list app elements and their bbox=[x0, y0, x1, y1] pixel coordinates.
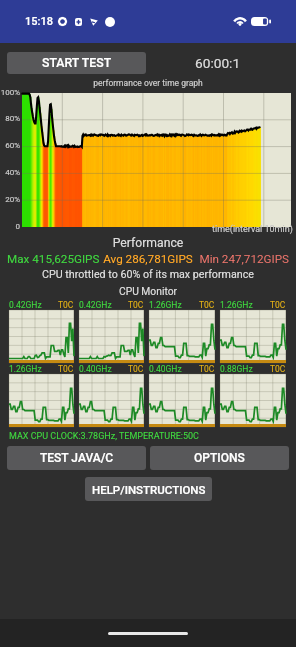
staticText: 0.42GHz bbox=[79, 300, 112, 310]
button[interactable]: START TEST bbox=[7, 52, 146, 74]
staticText: 20% bbox=[0, 195, 20, 204]
staticText: performance over time graph bbox=[0, 78, 296, 88]
staticText: 15:18 bbox=[25, 15, 53, 28]
staticText: T0C bbox=[128, 300, 144, 310]
staticText: T0C bbox=[199, 300, 215, 310]
staticText: Performance bbox=[0, 236, 296, 250]
button[interactable]: OPTIONS bbox=[150, 446, 289, 470]
staticText: TEST JAVA/C bbox=[40, 451, 114, 465]
staticText: T0C bbox=[199, 364, 215, 374]
button[interactable]: HELP/INSTRUCTIONS bbox=[85, 477, 212, 501]
staticText: T0C bbox=[270, 300, 286, 310]
staticText: HELP/INSTRUCTIONS bbox=[92, 483, 206, 496]
staticText: time(interval 10min) bbox=[212, 224, 293, 235]
staticText: MAX CPU CLOCK:3.78GHz, TEMPERATURE:50C bbox=[9, 431, 296, 442]
staticText: 100% bbox=[0, 88, 20, 97]
staticText: Avg 286,781GIPS bbox=[101, 252, 195, 266]
staticText: 1.26GHz bbox=[220, 300, 253, 310]
staticText: Min 247,712GIPS bbox=[195, 252, 289, 266]
staticText: T0C bbox=[270, 364, 286, 374]
staticText: T0C bbox=[58, 364, 74, 374]
staticText: 60% bbox=[0, 141, 20, 150]
staticText: 40% bbox=[0, 168, 20, 177]
staticText: 0 bbox=[0, 222, 20, 231]
staticText: 1.26GHz bbox=[149, 300, 182, 310]
staticText: 80% bbox=[0, 114, 20, 123]
staticText: CPU Monitor bbox=[0, 285, 296, 297]
staticText: 0.40GHz bbox=[149, 364, 182, 374]
staticText: 0.42GHz bbox=[9, 300, 42, 310]
staticText: T0C bbox=[128, 364, 144, 374]
staticText: 0.40GHz bbox=[79, 364, 112, 374]
staticText: T0C bbox=[58, 300, 74, 310]
staticText: START TEST bbox=[42, 56, 112, 70]
staticText: 60:00:1 bbox=[195, 55, 241, 71]
staticText: Max 415,625GIPS bbox=[7, 252, 101, 266]
staticText: 1.26GHz bbox=[9, 364, 42, 374]
button[interactable]: TEST JAVA/C bbox=[7, 446, 146, 470]
staticText: OPTIONS bbox=[194, 451, 245, 465]
staticText: CPU throttled to 60% of its max performa… bbox=[0, 268, 296, 281]
staticText: 0.88GHz bbox=[220, 364, 253, 374]
